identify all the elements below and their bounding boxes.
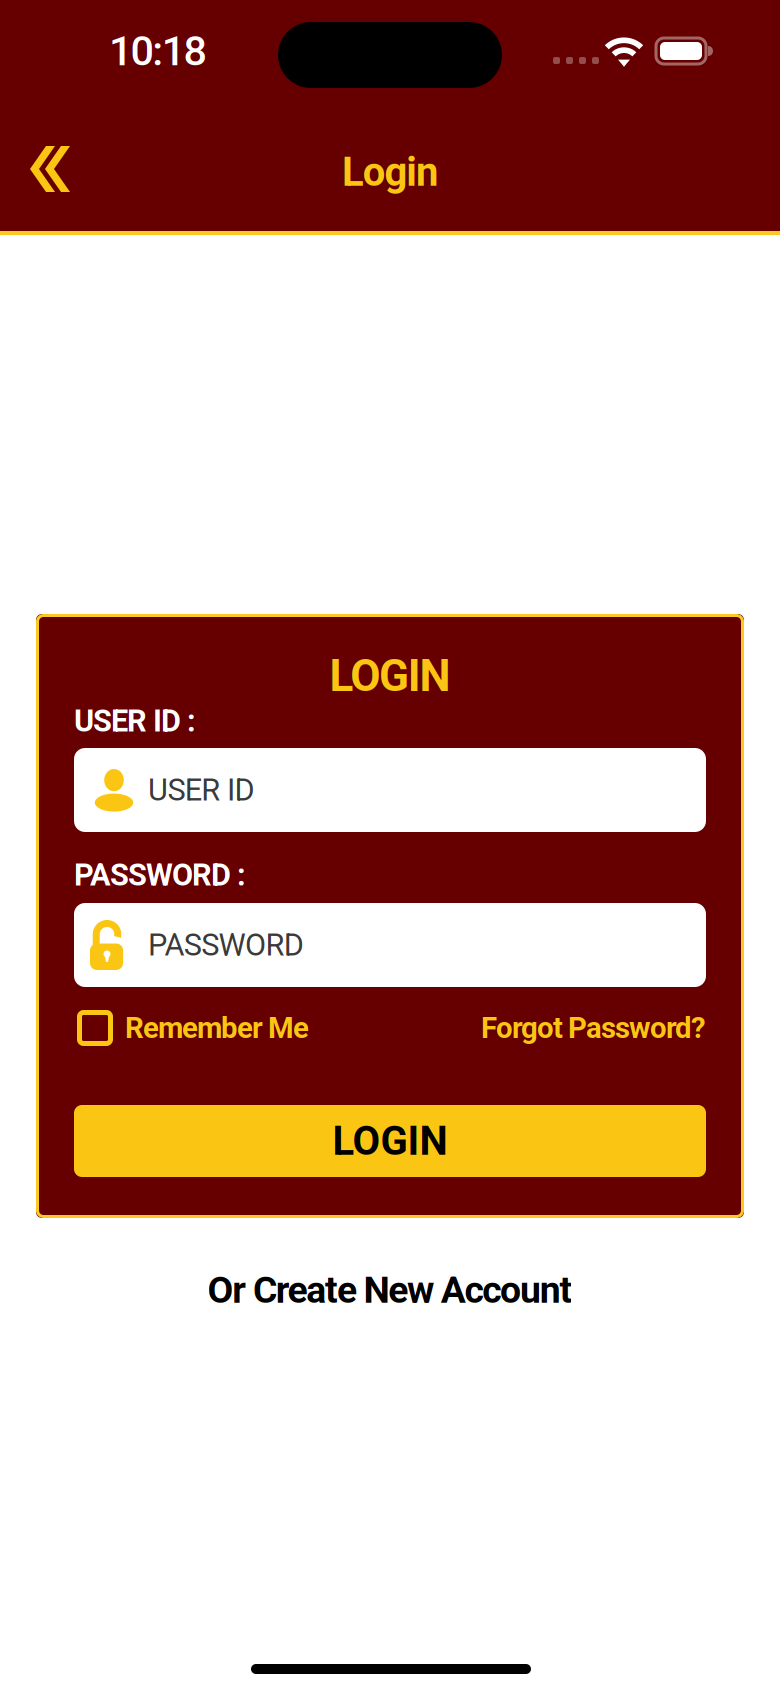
- staticText: USER ID: [148, 772, 254, 808]
- button[interactable]: Back: [0, 110, 104, 214]
- staticText: PASSWORD :: [74, 857, 246, 893]
- staticText: Forgot Password?: [481, 1011, 706, 1045]
- button[interactable]: Or Create New Account: [0, 1266, 780, 1314]
- staticText: Remember Me: [125, 1011, 309, 1045]
- staticText: 10:18: [109, 27, 206, 75]
- staticText: LOGIN: [332, 1118, 447, 1164]
- staticText: LOGIN: [329, 650, 451, 702]
- button[interactable]: Forgot Password?: [406, 1008, 706, 1048]
- staticText: Or Create New Account: [207, 1268, 572, 1312]
- button[interactable]: Remember Me: [77, 1008, 377, 1048]
- staticText: PASSWORD: [148, 927, 304, 963]
- staticText: Login: [342, 149, 438, 195]
- button[interactable]: LOGIN: [74, 1105, 706, 1177]
- staticText: USER ID :: [74, 703, 196, 739]
